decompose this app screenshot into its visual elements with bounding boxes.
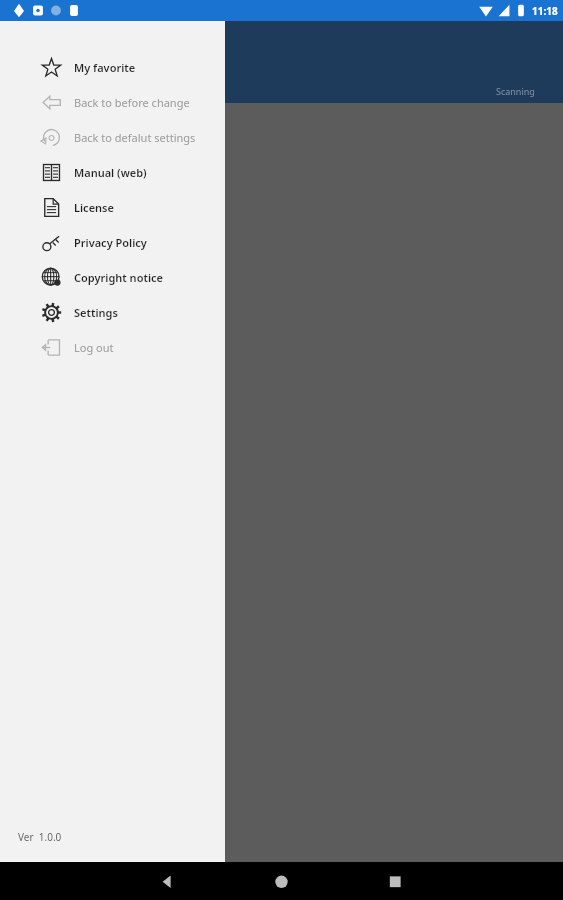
staticText: Log out [74,340,114,355]
staticText: My favorite [74,60,136,75]
staticText: Privacy Policy [74,235,147,250]
staticText: Ver 1.0.0 [18,830,62,844]
button[interactable]: Settings [0,295,225,330]
staticText: Settings [74,305,118,320]
button[interactable]: My favorite [0,50,225,85]
button[interactable]: Privacy Policy [0,225,225,260]
staticText: 11:18 [532,4,558,18]
staticText: Scanning [496,85,535,97]
staticText: Manual (web) [74,165,147,180]
button[interactable]: Recent apps [375,862,563,900]
button[interactable]: License [0,190,225,225]
button[interactable]: Back to before change [0,85,225,120]
staticText: Copyright notice [74,270,163,285]
button[interactable]: Back to defalut settings [0,120,225,155]
staticText: Back to defalut settings [74,130,196,145]
staticText: License [74,200,114,215]
button[interactable]: Copyright notice [0,260,225,295]
button[interactable]: Home [187,862,375,900]
button[interactable]: Log out [0,330,225,365]
button[interactable]: Manual (web) [0,155,225,190]
button[interactable]: Back [0,862,187,900]
staticText: Back to before change [74,95,190,110]
